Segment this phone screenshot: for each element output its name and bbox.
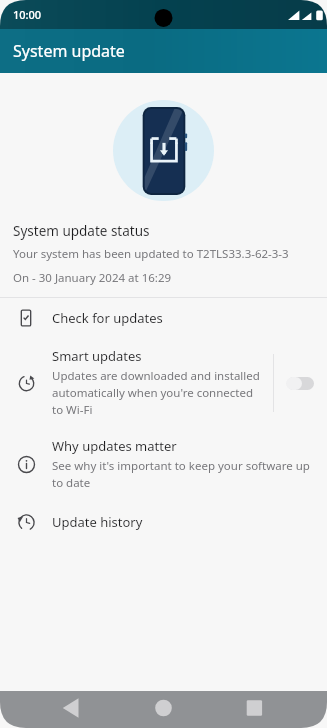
button[interactable]: Check for updates (0, 298, 327, 338)
staticText: Updates are downloaded and installed aut… (52, 368, 265, 418)
staticText: Your system has been updated to T2TLS33.… (13, 246, 289, 262)
button[interactable]: Why updates matter (0, 428, 327, 501)
staticText: Why updates matter (52, 437, 177, 455)
staticText: System update status (13, 222, 150, 240)
button[interactable]: Update history (0, 501, 327, 543)
staticText: Check for updates (52, 309, 163, 327)
staticText: On - 30 January 2024 at 16:29 (13, 270, 172, 286)
staticText: Update history (52, 513, 143, 531)
button[interactable]: Smart updates toggle (274, 354, 327, 412)
staticText: Smart updates (52, 347, 142, 365)
button[interactable]: Smart updates (0, 338, 273, 428)
staticText: See why it's important to keep your soft… (52, 458, 314, 491)
staticText: 10:00 (13, 7, 42, 22)
staticText: System update (13, 40, 125, 62)
